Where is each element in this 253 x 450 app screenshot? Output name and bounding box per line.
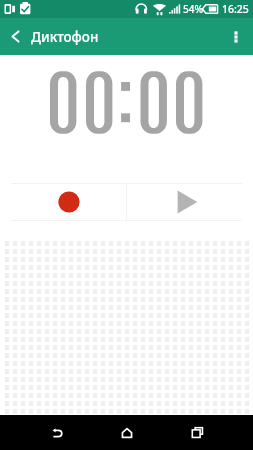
button[interactable]: Record — [11, 184, 126, 220]
button[interactable]: Recents — [162, 415, 232, 450]
staticText: 54% — [183, 2, 203, 16]
staticText: Диктофон — [31, 28, 99, 46]
staticText: 16:25 — [222, 2, 249, 16]
button[interactable]: More options — [219, 18, 253, 55]
button[interactable]: Back — [22, 415, 92, 450]
button[interactable]: Home — [92, 415, 162, 450]
button[interactable]: Play — [127, 184, 242, 220]
button[interactable]: Back — [0, 18, 31, 55]
